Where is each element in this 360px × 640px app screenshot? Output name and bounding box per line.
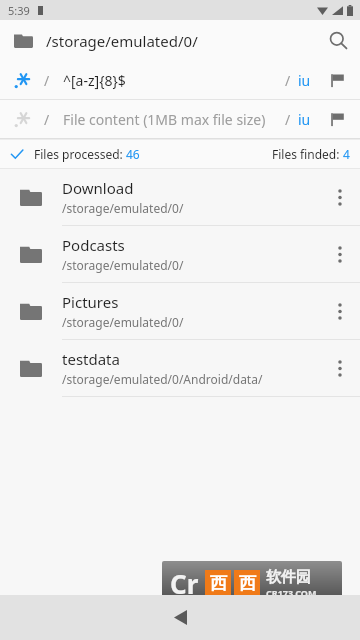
button[interactable]: More options	[320, 348, 360, 388]
staticText: /storage/emulated/0/	[46, 31, 198, 51]
staticText: 西	[210, 573, 227, 594]
button[interactable]: More options	[320, 291, 360, 331]
staticText: /	[44, 110, 50, 129]
button[interactable]: Search	[316, 20, 360, 61]
staticText: File content (1MB max file size)	[63, 110, 285, 129]
button[interactable]: /	[0, 61, 360, 99]
button[interactable]: More options	[320, 234, 360, 274]
staticText: ^[a-z]{8}$	[63, 71, 285, 90]
staticText: iu	[298, 110, 311, 129]
button[interactable]: Podcasts	[0, 226, 360, 282]
staticText: Files processed:	[34, 146, 126, 162]
button[interactable]: Back	[156, 595, 204, 640]
button[interactable]: /	[0, 100, 360, 138]
button[interactable]: Pictures	[0, 283, 360, 339]
staticText: Podcasts	[62, 235, 125, 255]
staticText: CR173.COM	[266, 587, 317, 599]
staticText: /storage/emulated/0/Android/data/com.goo…	[62, 371, 314, 387]
staticText: /storage/emulated/0/	[62, 257, 184, 273]
staticText: Download	[62, 178, 134, 198]
staticText: 5:39	[8, 3, 30, 18]
staticText: Cr	[170, 566, 199, 601]
staticText: /	[285, 110, 291, 129]
button[interactable]: Regex flags	[324, 106, 350, 132]
staticText: /storage/emulated/0/	[62, 314, 184, 330]
staticText: 4	[343, 146, 350, 162]
staticText: testdata	[62, 349, 120, 369]
staticText: /storage/emulated/0/	[62, 200, 184, 216]
staticText: Files finded:	[272, 146, 343, 162]
staticText: iu	[298, 71, 311, 90]
staticText: 软件园	[266, 568, 311, 587]
staticText: Pictures	[62, 292, 119, 312]
button[interactable]: Download	[0, 169, 360, 225]
button[interactable]: Regex flags	[324, 67, 350, 93]
button[interactable]: testdata	[0, 340, 360, 396]
staticText: /	[285, 71, 291, 90]
staticText: /	[44, 71, 50, 90]
staticText: 西	[239, 573, 256, 594]
staticText: 46	[126, 146, 140, 162]
button[interactable]: More options	[320, 177, 360, 217]
